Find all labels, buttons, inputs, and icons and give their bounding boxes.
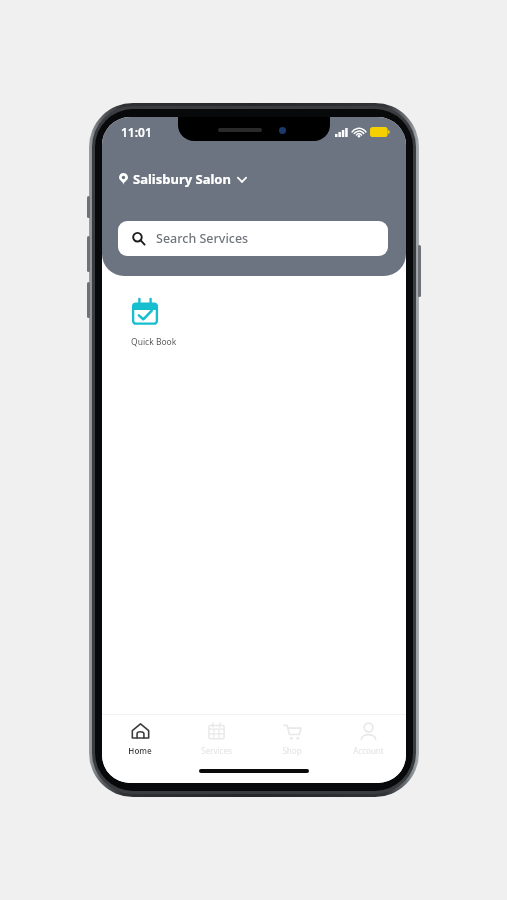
staticText: 11:01	[121, 124, 152, 140]
staticText: Salisbury Salon	[133, 170, 231, 188]
staticText: Home	[128, 745, 152, 756]
button[interactable]: Shop	[254, 715, 330, 763]
button[interactable]: Services	[178, 715, 254, 763]
staticText: Search Services	[156, 230, 249, 247]
button[interactable]: Account	[330, 715, 406, 763]
staticText: Services	[201, 745, 232, 756]
button[interactable]: Salisbury Salon	[117, 167, 249, 191]
staticText: Shop	[282, 745, 302, 756]
button[interactable]: Home	[102, 715, 178, 763]
staticText: Quick Book	[131, 336, 177, 348]
button[interactable]: Quick Book	[127, 295, 181, 351]
button[interactable]: Search Services	[118, 221, 388, 256]
staticText: Account	[353, 745, 384, 756]
